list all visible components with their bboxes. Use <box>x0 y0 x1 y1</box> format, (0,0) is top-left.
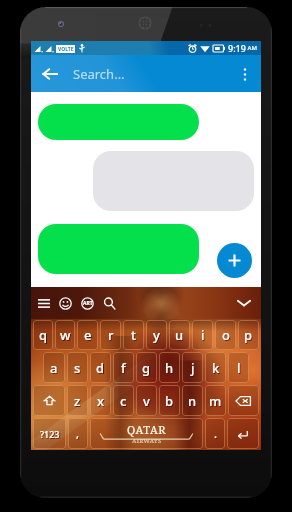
staticText: u <box>175 326 184 344</box>
button[interactable]: t <box>123 320 144 350</box>
button[interactable]: g <box>136 352 157 383</box>
button[interactable]: o <box>215 320 236 350</box>
button[interactable]: s <box>67 352 88 383</box>
staticText: a <box>50 359 58 377</box>
staticText: y <box>154 327 161 345</box>
staticText: f <box>121 359 126 377</box>
staticText: k <box>212 359 220 377</box>
button[interactable]: Back <box>38 62 62 86</box>
button[interactable]: Search <box>101 295 118 312</box>
button[interactable]: Emoji <box>57 295 74 312</box>
staticText: b <box>166 393 175 411</box>
staticText: , <box>76 426 80 441</box>
button[interactable]: v <box>136 385 157 416</box>
button[interactable]: a <box>43 352 65 383</box>
staticText: e <box>85 327 93 345</box>
staticText: i <box>202 327 206 345</box>
staticText: a <box>51 360 59 378</box>
button[interactable]: More options <box>235 64 255 84</box>
staticText: c <box>121 393 128 411</box>
staticText: c <box>120 392 127 410</box>
staticText: f <box>122 360 127 378</box>
button[interactable]: ?123 <box>33 418 66 449</box>
staticText: h <box>165 359 174 377</box>
staticText: AIRWAYS <box>132 437 162 445</box>
staticText: p <box>245 327 254 345</box>
staticText: s <box>74 359 81 377</box>
button[interactable]: c <box>113 385 134 416</box>
button[interactable]: , <box>68 418 88 449</box>
staticText: d <box>97 360 106 378</box>
button[interactable] <box>38 224 199 274</box>
button[interactable]: n <box>182 385 203 416</box>
button[interactable]: Hide keyboard <box>236 295 252 311</box>
button[interactable]: j <box>182 352 203 383</box>
button[interactable]: q <box>33 320 53 350</box>
button[interactable]: d <box>90 352 111 383</box>
staticText: d <box>96 359 105 377</box>
staticText: w <box>60 326 71 344</box>
button[interactable]: m <box>205 385 226 416</box>
staticText: . <box>214 426 217 441</box>
staticText: x <box>98 393 106 411</box>
staticText: v <box>143 392 150 410</box>
staticText: ?123 <box>41 429 61 441</box>
staticText: QATAR <box>127 422 167 437</box>
button[interactable]: Menu <box>35 295 52 312</box>
button[interactable]: r <box>100 320 121 350</box>
staticText: l <box>237 359 241 377</box>
button[interactable]: i <box>192 320 213 350</box>
button[interactable]: x <box>90 385 111 416</box>
staticText: q <box>40 327 49 345</box>
button[interactable]: p <box>238 320 259 350</box>
button[interactable]: e <box>77 320 98 350</box>
button[interactable]: Add <box>217 243 252 278</box>
staticText: . <box>215 427 218 442</box>
staticText: e <box>84 326 92 344</box>
staticText: i <box>201 326 205 344</box>
staticText: h <box>166 360 175 378</box>
button[interactable]: u <box>169 320 190 350</box>
staticText: g <box>143 360 152 378</box>
staticText: q <box>39 326 48 344</box>
staticText: k <box>213 360 221 378</box>
staticText: j <box>192 360 196 378</box>
button[interactable]: l <box>228 352 249 383</box>
staticText: z <box>75 393 82 411</box>
staticText: l <box>238 360 242 378</box>
staticText: j <box>191 359 195 377</box>
staticText: VOLTE <box>58 46 74 53</box>
staticText: m <box>209 392 222 410</box>
staticText: , <box>77 427 81 442</box>
staticText: r <box>109 327 115 345</box>
button[interactable]: Backspace <box>228 385 259 416</box>
staticText: b <box>165 392 174 410</box>
button[interactable]: Enter <box>227 418 259 449</box>
staticText: u <box>176 327 185 345</box>
staticText: g <box>142 359 151 377</box>
button[interactable]: Space <box>90 418 203 449</box>
staticText: p <box>244 326 253 344</box>
staticText: 9:19 <box>228 42 246 54</box>
staticText: z <box>74 392 81 410</box>
staticText: AM <box>246 44 257 52</box>
button[interactable]: k <box>205 352 226 383</box>
button[interactable]: Art themes <box>79 295 96 312</box>
button[interactable]: . <box>205 418 225 449</box>
button[interactable]: b <box>159 385 180 416</box>
staticText: o <box>223 327 231 345</box>
staticText: y <box>153 326 160 344</box>
staticText: n <box>189 393 198 411</box>
staticText: Search... <box>73 65 125 83</box>
button[interactable]: w <box>55 320 75 350</box>
button[interactable]: f <box>113 352 134 383</box>
button[interactable]: h <box>159 352 180 383</box>
staticText: v <box>144 393 151 411</box>
staticText: t <box>131 326 136 344</box>
button[interactable]: z <box>67 385 88 416</box>
staticText: w <box>61 327 72 345</box>
button[interactable]: y <box>146 320 167 350</box>
button[interactable] <box>93 151 254 211</box>
button[interactable] <box>38 104 199 140</box>
button[interactable]: Shift <box>33 385 65 416</box>
